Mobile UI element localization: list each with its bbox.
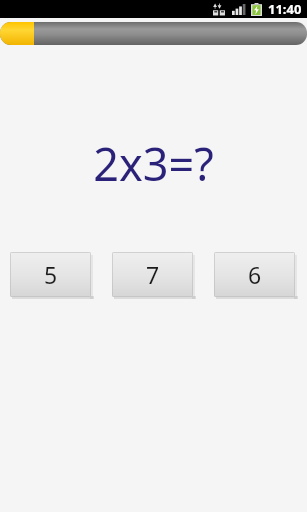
- staticText: 2x3=?: [93, 133, 214, 194]
- button[interactable]: 7: [112, 252, 195, 299]
- staticText: 11:40: [268, 0, 302, 18]
- button[interactable]: 6: [214, 252, 297, 299]
- button[interactable]: 5: [10, 252, 93, 299]
- staticText: 7: [146, 259, 160, 290]
- staticText: 5: [44, 259, 58, 290]
- staticText: 6: [248, 259, 262, 290]
